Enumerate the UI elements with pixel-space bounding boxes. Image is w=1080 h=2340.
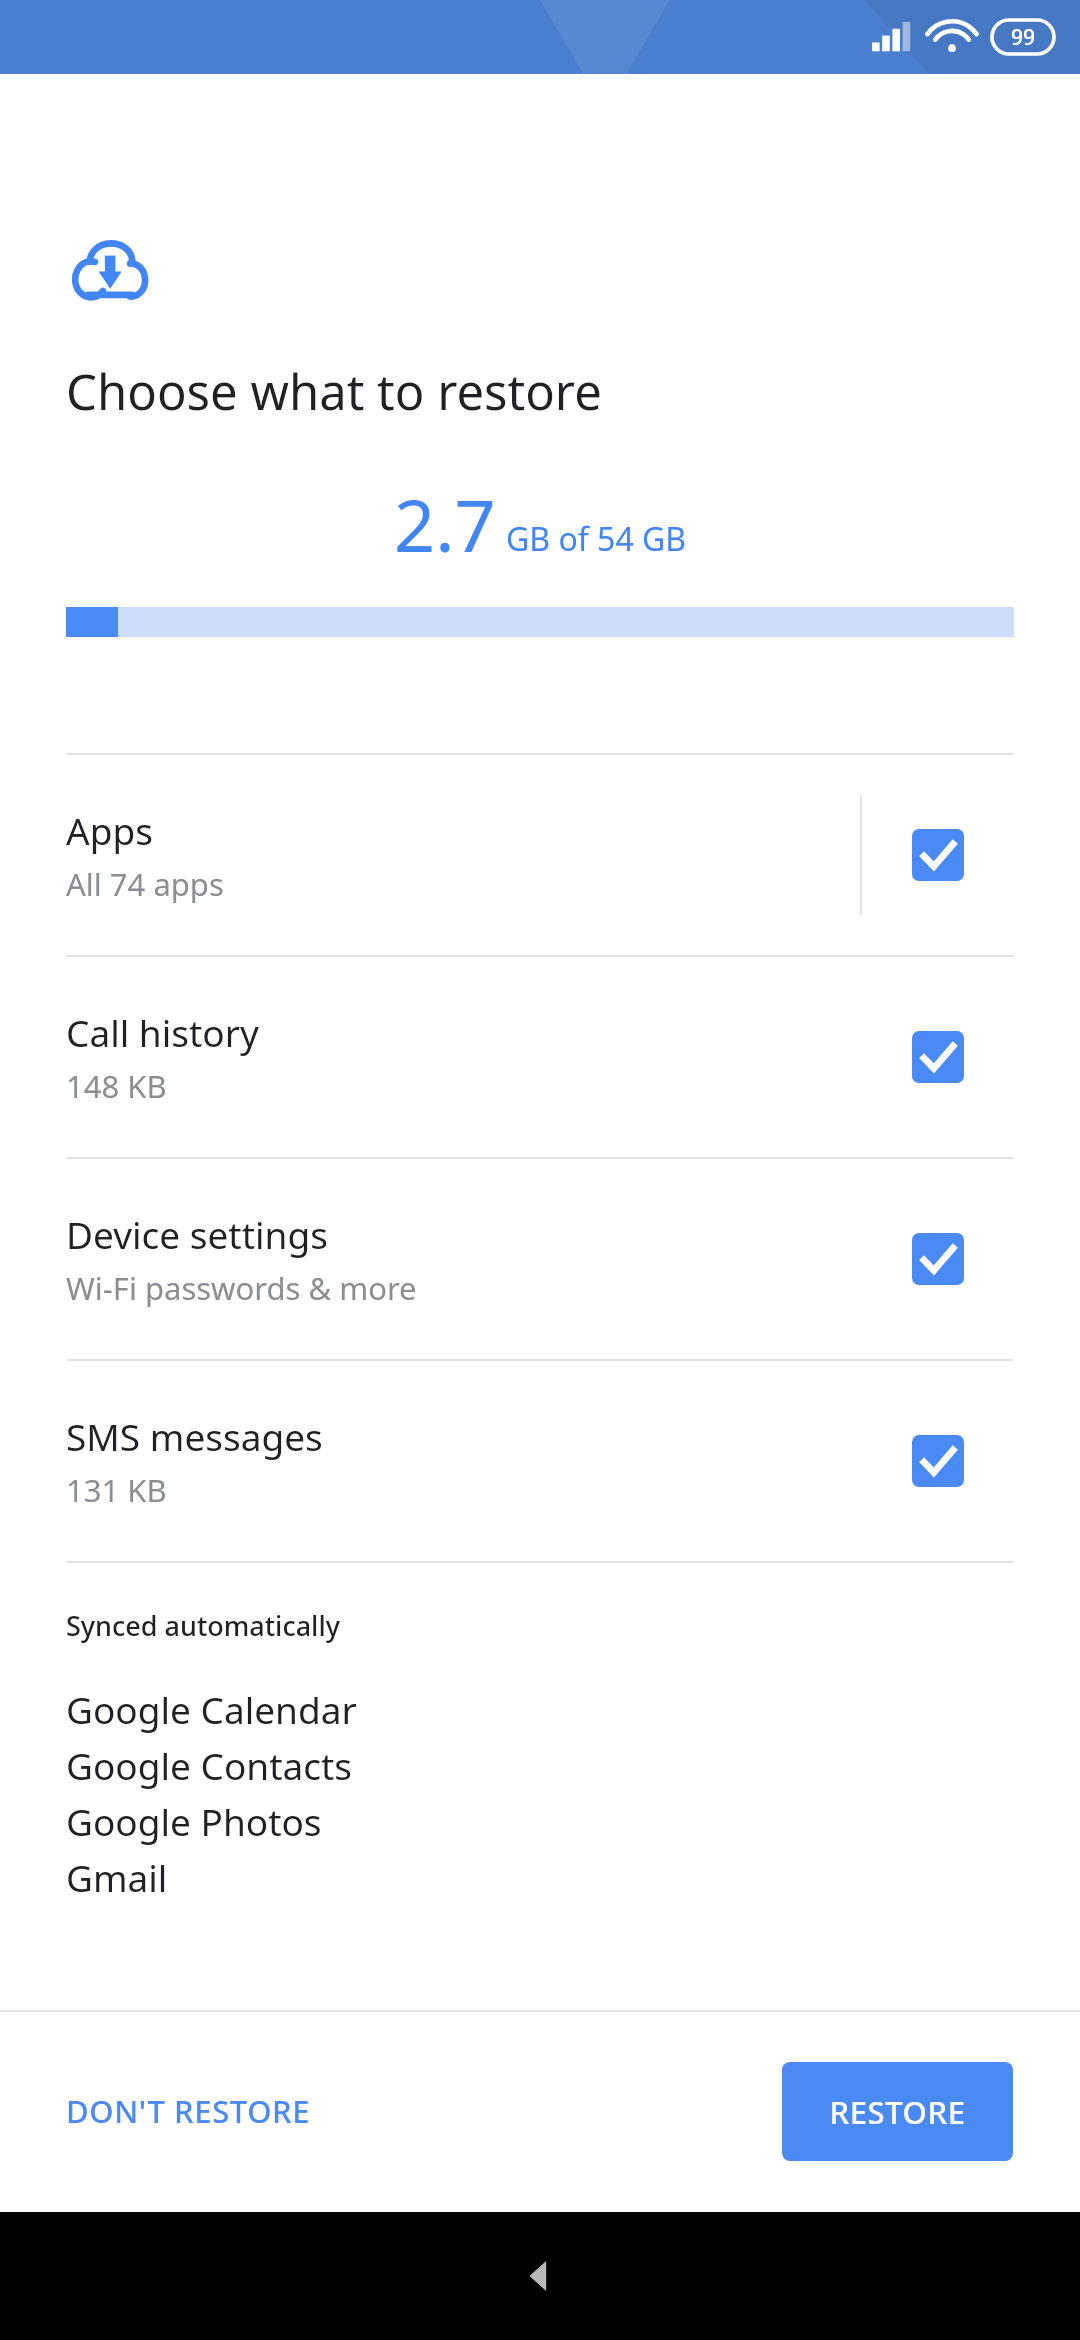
staticText: SMS messages [66, 1411, 323, 1461]
staticText: Google Calendar [66, 1684, 357, 1734]
staticText: RESTORE [829, 2091, 966, 2133]
staticText: DON'T RESTORE [66, 2090, 311, 2132]
staticText: Choose what to restore [66, 358, 602, 425]
button[interactable]: SMS messages [0, 1361, 1080, 1561]
staticText: Gmail [66, 1852, 168, 1902]
button[interactable]: Toggle Apps [862, 755, 1014, 955]
staticText: 148 KB [66, 1065, 167, 1107]
button[interactable]: Toggle Device settings [862, 1159, 1014, 1359]
button[interactable]: Call history [0, 957, 1080, 1157]
staticText: Apps [66, 805, 153, 855]
staticText: All 74 apps [66, 863, 224, 905]
staticText: Google Photos [66, 1796, 322, 1846]
staticText: 131 KB [66, 1469, 167, 1511]
button[interactable]: DON'T RESTORE [40, 2070, 337, 2152]
button[interactable]: RESTORE [782, 2062, 1013, 2161]
staticText: GB of 54 GB [506, 517, 687, 561]
button[interactable]: Toggle SMS messages [862, 1361, 1014, 1561]
staticText: Synced automatically [66, 1607, 340, 1644]
staticText: 2.7 [394, 475, 496, 573]
button[interactable]: Device settings [0, 1159, 1080, 1359]
staticText: Google Contacts [66, 1740, 353, 1790]
staticText: Wi-Fi passwords & more [66, 1267, 417, 1309]
staticText: Device settings [66, 1209, 328, 1259]
staticText: Call history [66, 1007, 259, 1057]
button[interactable]: Toggle Call history [862, 957, 1014, 1157]
button[interactable]: Apps [0, 755, 1080, 955]
button[interactable]: Back [485, 2221, 595, 2331]
staticText: 99 [1011, 23, 1036, 52]
